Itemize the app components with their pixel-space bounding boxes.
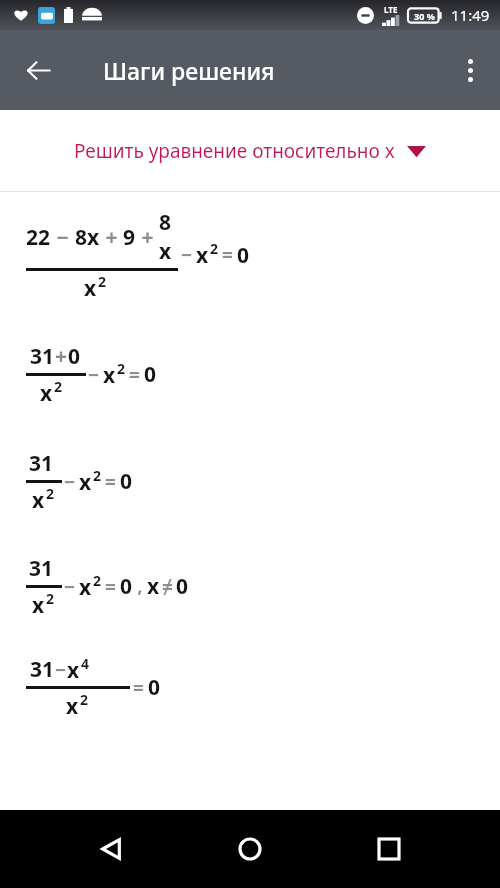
staticText: 11:49 (451, 5, 490, 25)
button[interactable]: More options (446, 46, 494, 94)
staticText: − (64, 574, 76, 600)
staticText: 0 (176, 572, 189, 601)
staticText: 0 (120, 572, 133, 601)
staticText: , (133, 575, 147, 598)
staticText: 8x (75, 223, 100, 252)
staticText: + (100, 223, 123, 252)
staticText: 0 (237, 241, 250, 270)
staticText: 9 (123, 223, 136, 252)
staticText: x (79, 573, 92, 601)
staticText: 31 (30, 655, 55, 684)
staticText: x (84, 274, 97, 302)
staticText: 2 (93, 571, 102, 590)
staticText: 2 (93, 466, 102, 485)
staticText: − (51, 223, 75, 252)
staticText: 2 (46, 589, 55, 608)
staticText: x (147, 572, 160, 601)
button[interactable]: Home (222, 821, 278, 877)
staticText: = (222, 242, 233, 268)
staticText: x (66, 692, 79, 720)
staticText: Шаги решения (103, 55, 275, 86)
button[interactable]: Recent apps (361, 821, 417, 877)
staticText: x (103, 361, 116, 389)
staticText: Решить уравнение относительно x (74, 138, 395, 164)
staticText: x (196, 241, 209, 269)
staticText: 30 % (414, 10, 435, 22)
staticText: 0 (148, 673, 161, 702)
staticText: x (32, 591, 45, 619)
staticText: = (105, 469, 116, 495)
button[interactable]: Back (14, 46, 62, 94)
staticText: 2 (98, 272, 107, 291)
staticText: x (32, 486, 45, 514)
staticText: 2 (46, 484, 55, 503)
staticText: 31 (30, 342, 55, 371)
staticText: − (64, 469, 76, 495)
staticText: = (105, 574, 116, 600)
staticText: 2 (80, 690, 89, 709)
staticText: 0 (144, 360, 157, 389)
staticText: + (55, 342, 68, 371)
button[interactable]: Back (83, 821, 139, 877)
staticText: x (67, 656, 80, 684)
staticText: = (129, 362, 140, 388)
button[interactable]: Решить уравнение относительно x (0, 110, 500, 191)
staticText: 0 (120, 467, 133, 496)
staticText: 31 (29, 449, 54, 478)
staticText: 4 (81, 654, 90, 673)
staticText: − (55, 657, 67, 683)
staticText: x (79, 468, 92, 496)
staticText: 2 (117, 359, 126, 378)
staticText: 8x (159, 208, 178, 266)
staticText: − (181, 242, 193, 268)
staticText: 2 (54, 377, 63, 396)
staticText: 0 (68, 342, 81, 371)
staticText: 2 (210, 239, 219, 258)
staticText: = (133, 675, 144, 701)
staticText: + (136, 223, 159, 252)
staticText: − (88, 362, 100, 388)
staticText: LTE (384, 4, 398, 15)
staticText: 31 (29, 554, 54, 583)
staticText: ≠ (162, 574, 173, 600)
staticText: x (40, 379, 53, 407)
staticText: 22 (26, 223, 51, 252)
